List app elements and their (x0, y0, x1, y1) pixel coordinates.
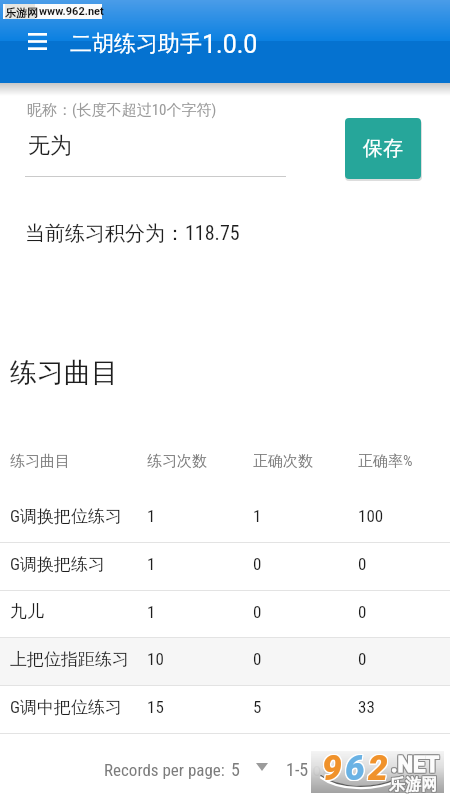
button[interactable]: Open navigation menu (18, 22, 56, 60)
staticText: 上把位指距练习 (10, 649, 129, 670)
staticText: 6 (344, 747, 364, 788)
staticText: 二胡练习助手 (70, 30, 202, 58)
staticText: .NET (391, 752, 440, 778)
staticText: 练习曲目 (10, 356, 118, 390)
button[interactable]: 九儿 (0, 591, 450, 638)
staticText: .NET (391, 751, 440, 777)
staticText: .NET (390, 751, 439, 777)
staticText: 6 (344, 748, 364, 789)
staticText: 9 (322, 749, 342, 790)
staticText: .NET (391, 753, 440, 779)
staticText: 6 (346, 748, 366, 789)
staticText: 0 (358, 649, 367, 669)
staticText: 2 (369, 749, 389, 790)
staticText: 9 (323, 748, 343, 789)
staticText: 6 (345, 749, 365, 790)
staticText: 乐游网 (388, 776, 436, 796)
staticText: 2 (369, 748, 389, 789)
staticText: 正确率% (358, 452, 413, 471)
staticText: 6 (345, 747, 365, 788)
staticText: 9 (322, 747, 342, 788)
staticText: 15 (147, 697, 164, 717)
staticText: 乐游网 (390, 775, 438, 795)
staticText: 9 (323, 747, 343, 788)
staticText: 1-5 of 5 (286, 759, 341, 780)
staticText: 无为 (28, 132, 72, 160)
staticText: 九儿 (10, 601, 44, 622)
staticText: 1 (147, 554, 156, 574)
staticText: 2 (368, 747, 388, 788)
staticText: 昵称：(长度不超过10个字符) (27, 101, 217, 120)
staticText: 9 (322, 748, 342, 789)
staticText: 2 (368, 748, 388, 789)
staticText: 正确次数 (253, 452, 313, 471)
staticText: 6 (346, 747, 366, 788)
staticText: 乐游网 (5, 6, 38, 20)
staticText: 当前练习积分为：118.75 (25, 221, 240, 246)
staticText: 2 (367, 747, 387, 788)
staticText: G调换把练习 (10, 554, 106, 575)
staticText: 乐游网 (389, 775, 437, 795)
button[interactable]: 练习曲目 (0, 447, 450, 475)
staticText: .NET (392, 752, 441, 778)
staticText: 2 (368, 749, 388, 790)
staticText: 10 (147, 649, 164, 669)
staticText: 6 (345, 748, 365, 789)
staticText: Records per page: (104, 760, 225, 780)
staticText: 0 (358, 602, 367, 622)
staticText: 乐游网 (388, 774, 436, 794)
staticText: 33 (358, 697, 375, 717)
staticText: 2 (369, 747, 389, 788)
staticText: 1.0.0 (202, 30, 258, 59)
staticText: 1 (147, 602, 156, 622)
staticText: 5 (231, 759, 240, 780)
staticText: 100 (358, 506, 384, 526)
button[interactable]: 上把位指距练习 (0, 638, 450, 686)
staticText: 5 (253, 697, 262, 717)
staticText: 0 (253, 649, 262, 669)
staticText: 9 (321, 748, 341, 789)
staticText: 练习曲目 (10, 452, 70, 471)
staticText: 2 (367, 748, 387, 789)
staticText: 乐游网 (389, 774, 437, 794)
staticText: 1 (147, 506, 156, 526)
staticText: 0 (253, 602, 262, 622)
staticText: G调换把位练习 (10, 506, 123, 527)
staticText: 2 (367, 749, 387, 790)
button[interactable]: G调换把练习 (0, 543, 450, 591)
staticText: .NET (392, 751, 441, 777)
staticText: G调中把位练习 (10, 697, 123, 718)
button[interactable]: G调中把位练习 (0, 686, 450, 734)
staticText: 练习次数 (147, 452, 207, 471)
staticText: 6 (346, 749, 366, 790)
staticText: 9 (321, 749, 341, 790)
staticText: 9 (323, 749, 343, 790)
staticText: 1 (253, 506, 262, 526)
staticText: 乐游网 (390, 776, 438, 796)
staticText: .NET (390, 753, 439, 779)
staticText: .NET (392, 753, 441, 779)
staticText: .NET (390, 752, 439, 778)
staticText: 6 (344, 749, 364, 790)
staticText: 乐游网 (390, 774, 438, 794)
staticText: 0 (253, 554, 262, 574)
staticText: www.962.net (39, 5, 104, 18)
staticText: 0 (358, 554, 367, 574)
button[interactable]: G调换把位练习 (0, 495, 450, 543)
staticText: 乐游网 (389, 776, 437, 796)
staticText: 保存 (363, 136, 403, 161)
staticText: 乐游网 (388, 775, 436, 795)
staticText: 9 (321, 747, 341, 788)
button[interactable]: Rows per page (250, 755, 274, 779)
button[interactable]: 保存 (345, 118, 421, 179)
